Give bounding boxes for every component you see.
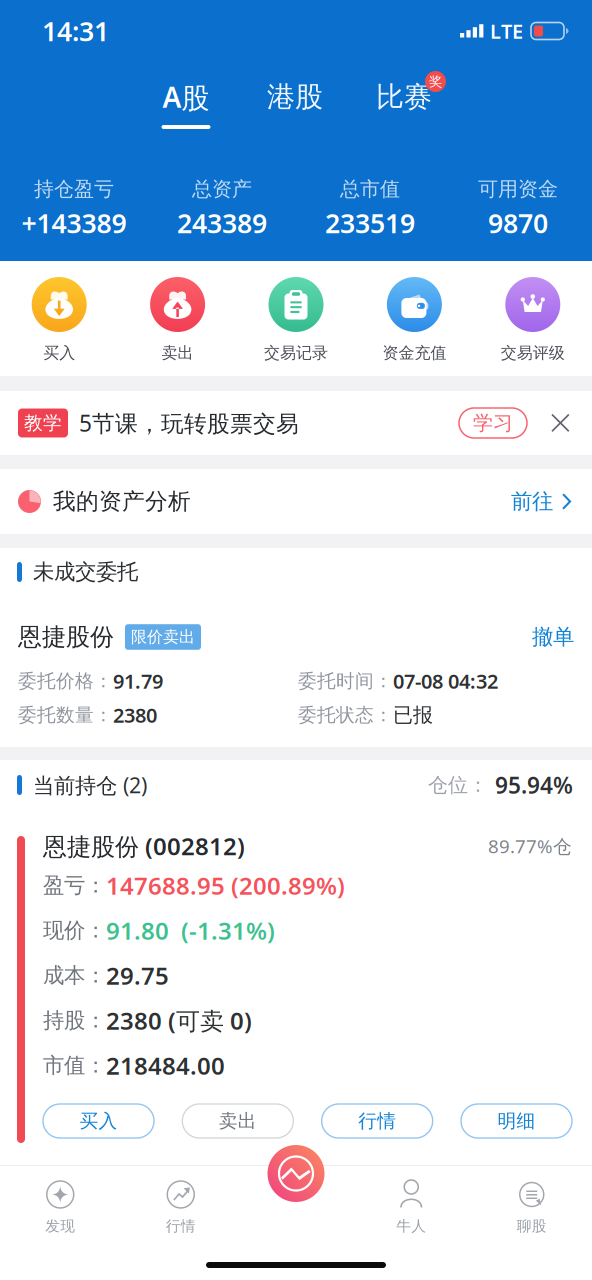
- staticText: 243389: [177, 205, 267, 241]
- staticText: 持股：: [43, 1007, 106, 1034]
- staticText: +143389: [21, 205, 126, 241]
- button[interactable]: 学习: [459, 408, 527, 438]
- button[interactable]: 行情: [120, 1175, 241, 1241]
- staticText: 总资产: [192, 177, 252, 201]
- button[interactable]: 比赛: [359, 83, 449, 129]
- staticText: 07-08 04:32: [393, 668, 498, 694]
- staticText: 撤单: [532, 624, 574, 650]
- staticText: 聊股: [517, 1217, 547, 1235]
- staticText: 2380: [113, 702, 157, 728]
- button[interactable]: 关闭: [527, 413, 572, 432]
- button[interactable]: 牛人: [351, 1175, 471, 1241]
- staticText: 委托价格：: [18, 669, 113, 692]
- staticText: LTE: [490, 18, 523, 44]
- staticText: 比赛: [376, 80, 432, 114]
- staticText: 委托状态：: [298, 703, 393, 726]
- button[interactable]: 买入: [0, 277, 118, 363]
- staticText: 未成交委托: [33, 559, 138, 585]
- button[interactable]: 买入: [43, 1104, 154, 1138]
- staticText: 95.94%: [495, 770, 573, 800]
- staticText: 持仓盈亏: [34, 177, 114, 201]
- staticText: 5节课，玩转股票交易: [79, 408, 299, 438]
- button[interactable]: 行情: [322, 1104, 433, 1138]
- button[interactable]: 交易: [267, 1145, 324, 1202]
- staticText: 卖出: [219, 1109, 257, 1132]
- staticText: 我的资产分析: [53, 488, 191, 515]
- staticText: 当前持仓 (2): [33, 771, 147, 799]
- staticText: 交易评级: [501, 343, 565, 363]
- button[interactable]: 明细: [461, 1104, 572, 1138]
- staticText: 现价：: [43, 917, 106, 944]
- staticText: 2380 (可卖 0): [106, 1005, 252, 1036]
- staticText: 明细: [497, 1109, 535, 1132]
- button[interactable]: A股: [141, 83, 231, 129]
- button[interactable]: 交易评级: [474, 277, 592, 363]
- staticText: 港股: [267, 80, 323, 114]
- staticText: 卖出: [162, 343, 194, 363]
- staticText: 委托数量：: [18, 703, 113, 726]
- button[interactable]: 交易记录: [237, 277, 355, 363]
- staticText: 前往: [511, 488, 553, 515]
- staticText: 218484.00: [106, 1050, 225, 1081]
- staticText: 委托时间：: [298, 669, 393, 692]
- button[interactable]: 我的资产分析: [0, 469, 592, 534]
- staticText: 91.80 (-1.31%): [106, 915, 275, 946]
- staticText: 233519: [325, 205, 415, 241]
- staticText: 买入: [79, 1109, 117, 1132]
- button[interactable]: 发现: [0, 1175, 120, 1241]
- staticText: 发现: [45, 1217, 75, 1235]
- button[interactable]: 资金充值: [355, 277, 474, 363]
- staticText: 29.75: [106, 960, 169, 991]
- button[interactable]: 聊股: [471, 1175, 592, 1241]
- staticText: 已报: [393, 703, 433, 727]
- staticText: 恩捷股份 (002812): [43, 830, 245, 862]
- staticText: 交易记录: [264, 343, 328, 363]
- staticText: 行情: [166, 1217, 196, 1235]
- staticText: 147688.95 (200.89%): [106, 870, 345, 901]
- button[interactable]: 撤单: [532, 624, 574, 650]
- staticText: 可用资金: [478, 177, 558, 201]
- staticText: 仓位：: [428, 773, 488, 797]
- staticText: 买入: [43, 343, 75, 363]
- staticText: 资金充值: [382, 343, 446, 363]
- staticText: 总市值: [340, 177, 400, 201]
- staticText: 市值：: [43, 1052, 106, 1079]
- staticText: 牛人: [396, 1217, 426, 1235]
- staticText: 奖: [429, 73, 442, 90]
- staticText: 教学: [24, 411, 62, 434]
- staticText: 成本：: [43, 962, 106, 989]
- staticText: 学习: [473, 411, 513, 435]
- staticText: 盈亏：: [43, 872, 106, 899]
- staticText: 限价卖出: [131, 627, 195, 647]
- button[interactable]: 卖出: [182, 1104, 293, 1138]
- staticText: 14:31: [42, 13, 109, 49]
- staticText: A股: [162, 78, 209, 116]
- button[interactable]: 卖出: [118, 277, 237, 363]
- staticText: 89.77%仓: [488, 834, 572, 858]
- button[interactable]: 港股: [250, 83, 340, 129]
- staticText: 91.79: [113, 668, 163, 694]
- staticText: 恩捷股份: [18, 622, 114, 652]
- staticText: 9870: [488, 205, 548, 241]
- staticText: 行情: [358, 1109, 396, 1132]
